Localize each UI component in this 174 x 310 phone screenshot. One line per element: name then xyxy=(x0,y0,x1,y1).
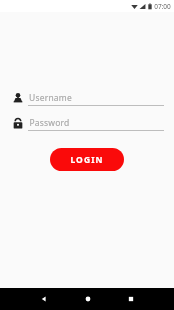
button[interactable]: Username xyxy=(29,90,164,105)
button[interactable]: Recent apps xyxy=(109,288,152,310)
staticText: LOGIN xyxy=(70,154,104,166)
button[interactable]: Back xyxy=(22,288,66,310)
other: Username xyxy=(11,91,25,105)
other: Password xyxy=(11,116,25,130)
button[interactable]: LOGIN xyxy=(50,148,124,171)
staticText: Username xyxy=(29,92,72,104)
staticText: Password xyxy=(29,117,70,129)
button[interactable]: Password xyxy=(29,115,164,130)
staticText: 07:00 xyxy=(154,2,171,11)
button[interactable]: Home xyxy=(66,288,109,310)
